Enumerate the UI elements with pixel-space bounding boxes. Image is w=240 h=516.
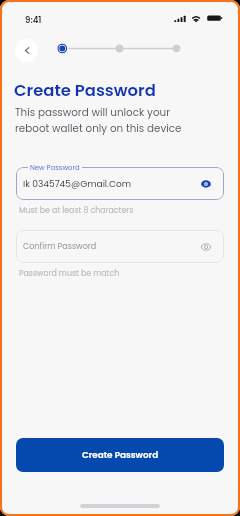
- staticText: Password must be match: [19, 268, 120, 279]
- staticText: Must be at least 8 characters: [19, 205, 134, 216]
- staticText: Create Password: [14, 79, 156, 102]
- staticText: Ik 0345745@Gmail.Com: [23, 177, 132, 190]
- staticText: Create Password: [82, 449, 159, 461]
- staticText: Confirm Password: [23, 241, 97, 252]
- button[interactable]: Show confirm password: [198, 239, 214, 255]
- staticText: This password will unlock your reboot wa…: [15, 105, 182, 136]
- button[interactable]: Ik 0345745@Gmail.Com: [16, 167, 224, 200]
- staticText: 9:41: [25, 14, 42, 26]
- button[interactable]: Back: [15, 39, 38, 62]
- button[interactable]: Confirm Password: [16, 230, 224, 263]
- button[interactable]: Create Password: [16, 438, 224, 472]
- button[interactable]: Show password: [198, 176, 214, 192]
- staticText: New Password: [30, 163, 80, 173]
